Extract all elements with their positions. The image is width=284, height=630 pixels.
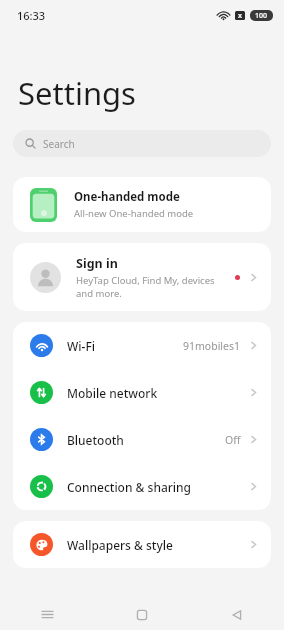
staticText: Bluetooth <box>67 432 225 448</box>
staticText: Wallpapers & style <box>67 537 248 553</box>
button[interactable]: Recent apps <box>0 599 94 630</box>
button[interactable]: Sign in <box>13 243 271 311</box>
button[interactable]: Wallpapers & style <box>13 521 271 568</box>
button[interactable]: Mobile network <box>13 369 271 416</box>
button[interactable]: Home <box>94 599 189 630</box>
button[interactable]: Bluetooth <box>13 416 271 463</box>
staticText: All-new One-handed mode <box>74 207 194 220</box>
staticText: 16:33 <box>17 8 46 23</box>
staticText: Connection & sharing <box>67 479 248 495</box>
button[interactable]: One-handed mode <box>13 177 271 232</box>
staticText: 100 <box>255 11 268 21</box>
staticText: Sign in <box>76 255 118 272</box>
staticText: 91mobiles1 <box>183 339 241 353</box>
button[interactable]: Connection & sharing <box>13 463 271 510</box>
button[interactable]: Search <box>13 130 271 157</box>
staticText: Mobile network <box>67 385 248 401</box>
staticText: Search <box>43 137 75 151</box>
button[interactable]: Back <box>189 599 284 630</box>
staticText: Off <box>225 433 241 447</box>
staticText: HeyTap Cloud, Find My, devices and more. <box>76 274 229 300</box>
staticText: One-handed mode <box>74 189 180 205</box>
staticText: Settings <box>18 72 136 114</box>
staticText: X <box>238 12 243 20</box>
button[interactable]: Wi-Fi <box>13 322 271 369</box>
staticText: Wi-Fi <box>67 338 183 354</box>
